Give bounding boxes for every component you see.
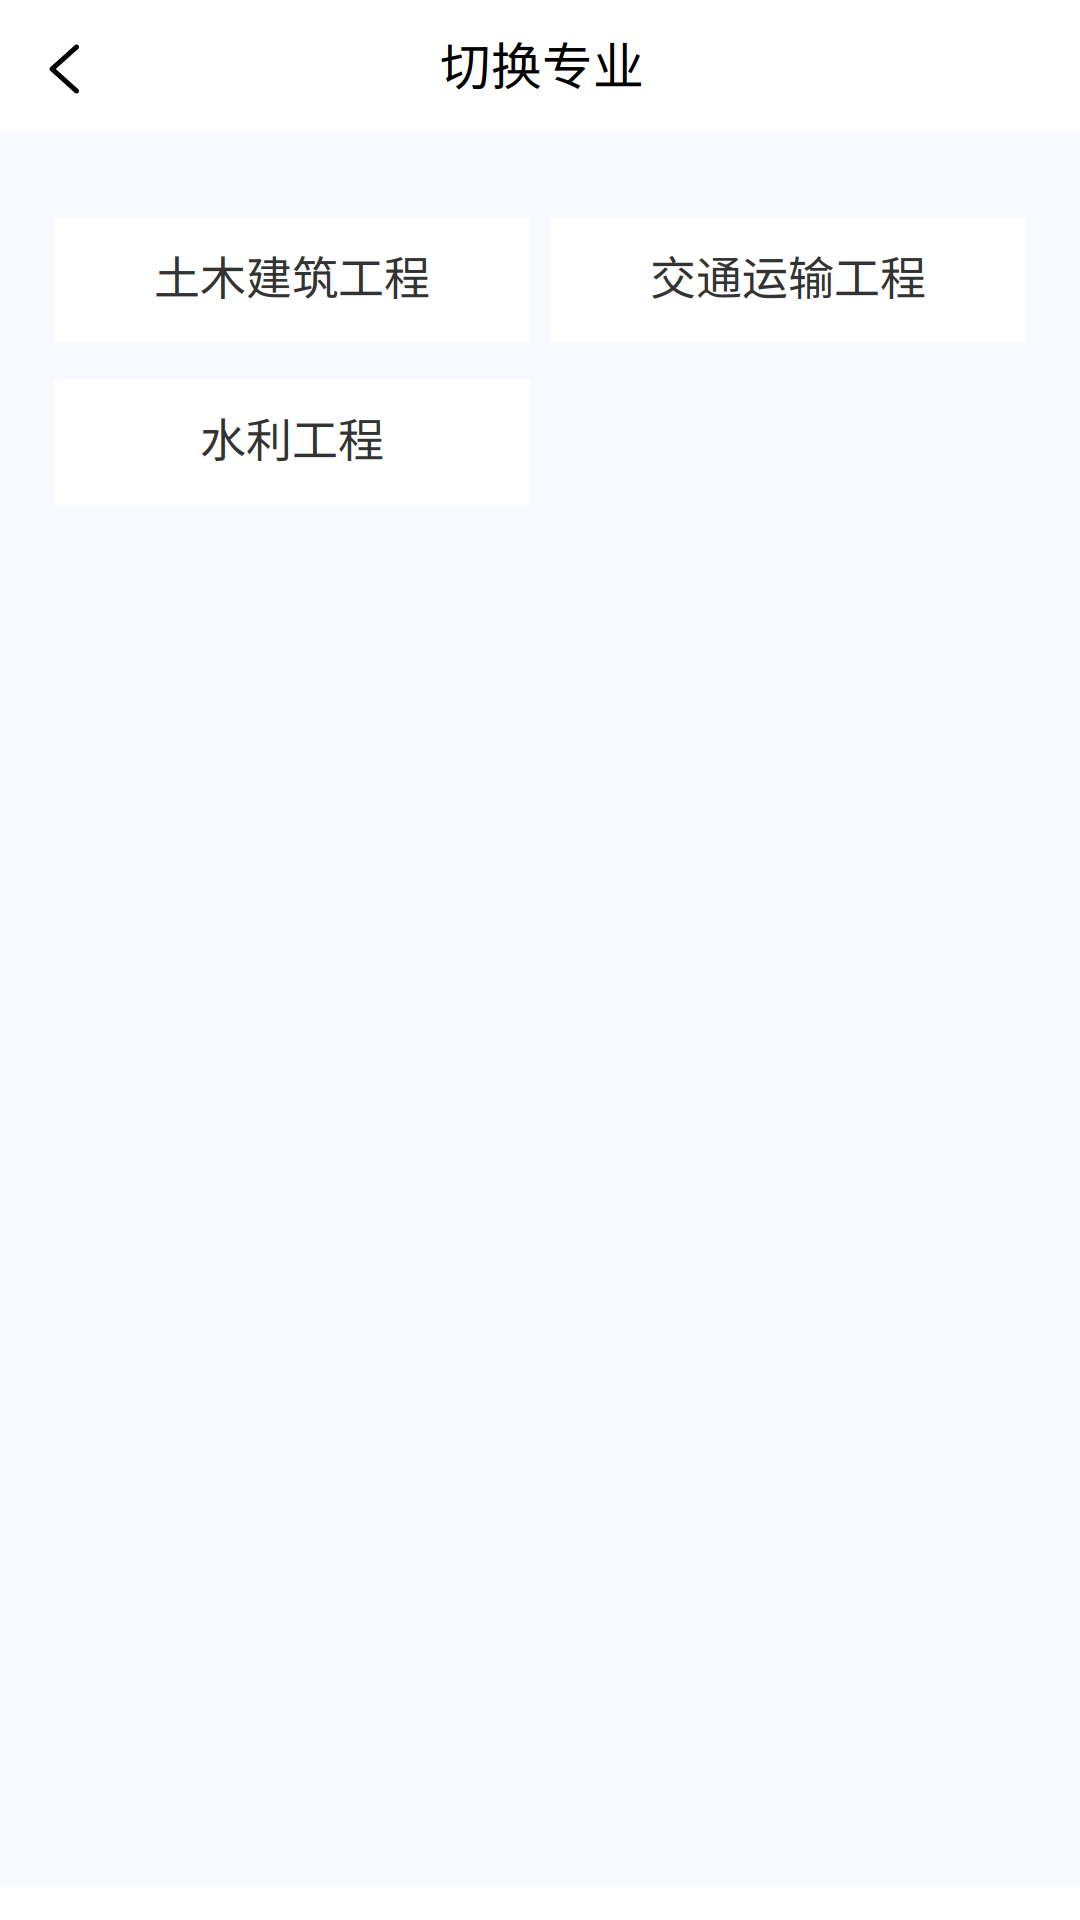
staticText: 交通运输工程 bbox=[650, 242, 926, 308]
button[interactable]: Back bbox=[0, 22, 116, 110]
staticText: 水利工程 bbox=[200, 404, 384, 470]
button[interactable]: 土木建筑工程 bbox=[54, 217, 530, 343]
staticText: 切换专业 bbox=[440, 26, 644, 100]
staticText: 土木建筑工程 bbox=[154, 242, 430, 308]
button[interactable]: 交通运输工程 bbox=[550, 217, 1026, 343]
button[interactable]: 水利工程 bbox=[54, 379, 530, 505]
